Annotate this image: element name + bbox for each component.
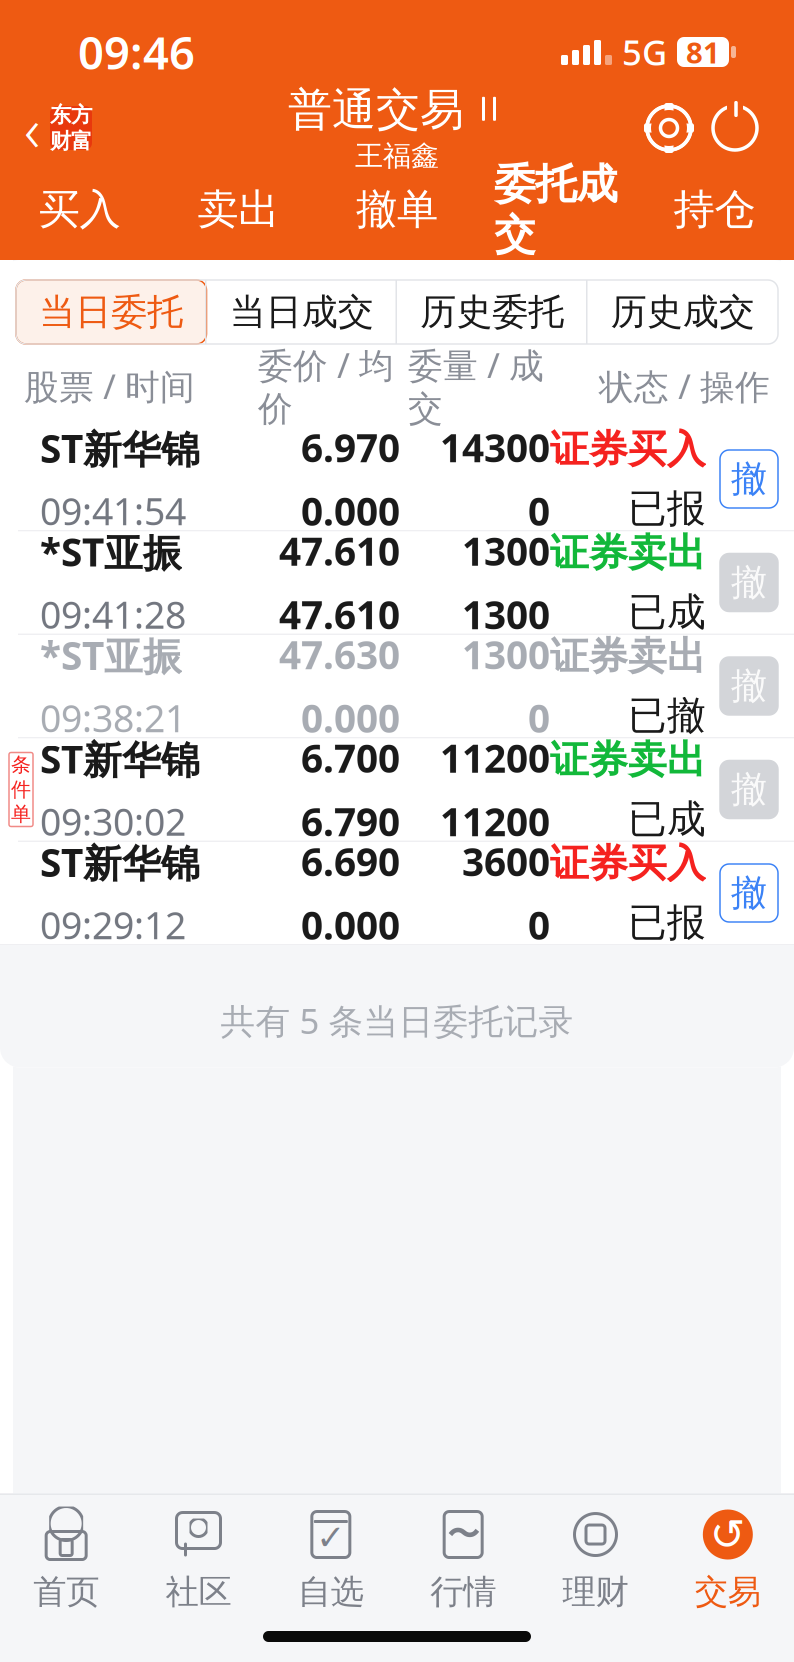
button[interactable]: 〜: [397, 1501, 529, 1619]
button[interactable]: ↺: [662, 1501, 794, 1619]
staticText: 09:46: [78, 22, 195, 82]
button[interactable]: 条: [0, 738, 794, 840]
staticText: 1300: [462, 525, 550, 576]
button[interactable]: 撤单: [720, 553, 778, 611]
button[interactable]: 持仓: [635, 174, 794, 260]
staticText: 首页: [33, 1571, 99, 1612]
staticText: 自选: [298, 1571, 364, 1612]
staticText: ST新华锦: [40, 836, 200, 888]
button[interactable]: 撤单: [720, 450, 778, 508]
staticText: 持仓: [674, 184, 756, 235]
button[interactable]: ST新华锦: [0, 842, 794, 944]
staticText: 09:29:12: [40, 900, 186, 950]
staticText: 47.610: [279, 525, 400, 576]
staticText: 14300: [440, 422, 550, 473]
staticText: 已成: [628, 795, 706, 843]
staticText: 条: [11, 753, 31, 777]
staticText: 0.000: [301, 692, 400, 743]
button[interactable]: *ST亚振: [0, 635, 794, 737]
staticText: ST新华锦: [40, 733, 200, 784]
staticText: 财富: [50, 128, 92, 154]
staticText: 单: [11, 802, 31, 826]
button[interactable]: 当日成交: [206, 280, 397, 344]
staticText: 6.970: [301, 422, 400, 473]
staticText: 已成: [628, 588, 706, 636]
staticText: 状态 / 操作: [599, 363, 770, 409]
staticText: 撤: [731, 767, 767, 812]
staticText: 共有 5 条当日委托记录: [220, 997, 573, 1043]
staticText: 当日委托: [39, 290, 183, 334]
button[interactable]: 卖出: [159, 174, 318, 260]
button[interactable]: ST新华锦: [0, 428, 794, 530]
staticText: 0.000: [301, 899, 400, 950]
staticText: 撤单: [356, 184, 438, 235]
button[interactable]: ✓: [265, 1501, 397, 1619]
staticText: ✓: [316, 1518, 345, 1557]
staticText: ‹: [24, 87, 40, 169]
staticText: 09:30:02: [40, 796, 186, 846]
staticText: *ST亚振: [40, 629, 182, 681]
staticText: 81: [686, 32, 720, 71]
button[interactable]: 撤单: [720, 864, 778, 922]
staticText: 09:41:54: [40, 486, 186, 536]
staticText: 证券卖出: [550, 736, 706, 783]
button[interactable]: 当日委托: [16, 280, 206, 344]
button[interactable]: 首页: [0, 1501, 132, 1619]
staticText: 3600: [462, 836, 550, 887]
staticText: 证券卖出: [550, 529, 706, 576]
staticText: 买入: [38, 184, 120, 235]
button[interactable]: 撤单: [318, 174, 476, 260]
staticText: 当日成交: [230, 290, 374, 334]
staticText: 委量 / 成交: [408, 342, 544, 430]
staticText: 1300: [462, 588, 550, 640]
staticText: 证券买入: [550, 839, 706, 887]
staticText: 撤: [731, 457, 767, 501]
staticText: 09:38:21: [40, 693, 186, 743]
button[interactable]: 买入: [0, 174, 159, 260]
staticText: 0.000: [301, 485, 400, 536]
staticText: 证券卖出: [550, 632, 706, 680]
staticText: 历史成交: [611, 290, 755, 334]
staticText: 委托成交: [494, 159, 617, 260]
button[interactable]: 刷新: [702, 95, 768, 161]
button[interactable]: *ST亚振: [0, 531, 794, 633]
staticText: 〜: [447, 1515, 479, 1554]
staticText: 6.790: [301, 795, 400, 847]
staticText: 47.630: [279, 629, 400, 680]
button[interactable]: 社区: [132, 1501, 265, 1619]
staticText: 撤: [731, 664, 767, 708]
staticText: 卖出: [197, 184, 279, 235]
staticText: 王福鑫: [355, 139, 439, 173]
button[interactable]: 理财: [529, 1501, 662, 1619]
staticText: 委价 / 均价: [258, 342, 394, 430]
staticText: ST新华锦: [40, 422, 200, 474]
staticText: ↺: [710, 1510, 746, 1559]
button[interactable]: 历史委托: [397, 280, 587, 344]
staticText: *ST亚振: [40, 526, 182, 577]
staticText: 6.700: [301, 732, 400, 783]
staticText: 行情: [430, 1571, 496, 1612]
staticText: 撤: [731, 871, 767, 915]
staticText: 理财: [562, 1571, 628, 1612]
staticText: 5G: [622, 29, 667, 75]
staticText: 股票 / 时间: [24, 363, 195, 409]
staticText: 东方: [50, 102, 92, 128]
staticText: 件: [11, 777, 31, 802]
button[interactable]: 撤单: [720, 657, 778, 715]
staticText: 09:41:28: [40, 589, 186, 639]
button[interactable]: 返回 东方财富: [0, 85, 106, 171]
staticText: 交易: [695, 1571, 761, 1612]
button[interactable]: 撤单: [720, 760, 778, 818]
staticText: 已报: [628, 485, 706, 532]
staticText: 47.610: [279, 588, 400, 640]
staticText: 证券买入: [550, 425, 706, 473]
staticText: 已撤: [628, 692, 706, 739]
button[interactable]: 设置: [636, 95, 702, 161]
button[interactable]: 委托成交: [476, 174, 635, 260]
staticText: 撤: [731, 560, 767, 605]
staticText: 普通交易: [288, 83, 464, 137]
staticText: 历史委托: [420, 290, 564, 334]
button[interactable]: 历史成交: [587, 280, 778, 344]
staticText: 6.690: [301, 836, 400, 887]
staticText: 0: [528, 485, 550, 536]
